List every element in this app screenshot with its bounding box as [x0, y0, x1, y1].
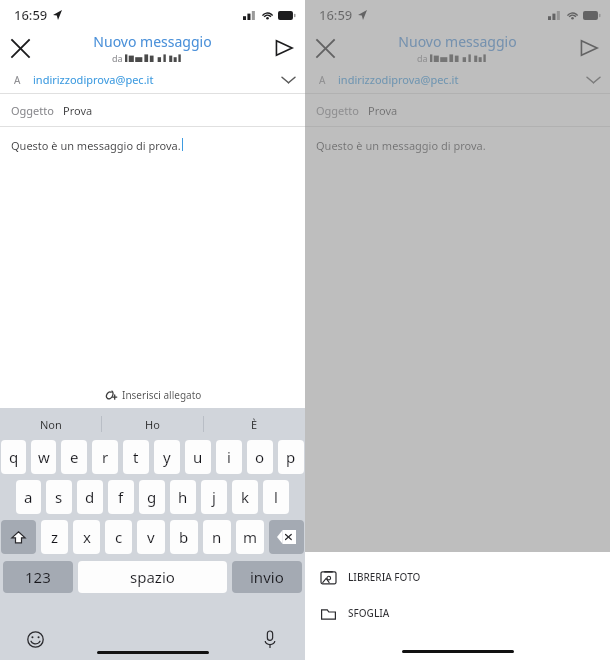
button[interactable]: v: [137, 520, 165, 554]
staticText: z: [51, 527, 59, 547]
staticText: r: [102, 447, 109, 467]
button[interactable]: j: [201, 480, 227, 514]
button[interactable]: h: [170, 480, 196, 514]
staticText: Oggetto: [11, 103, 54, 118]
staticText: s: [55, 487, 63, 507]
button[interactable]: a: [16, 480, 41, 514]
button[interactable]: w: [31, 440, 56, 474]
button[interactable]: t: [123, 440, 149, 474]
button[interactable]: Emoji: [22, 626, 48, 652]
staticText: f: [118, 487, 124, 507]
button[interactable]: Chiudi: [305, 30, 345, 66]
button[interactable]: p: [278, 440, 304, 474]
staticText: A: [14, 73, 21, 87]
button[interactable]: spazio: [78, 561, 227, 593]
staticText: g: [147, 487, 157, 507]
staticText: m: [243, 527, 258, 547]
button[interactable]: e: [61, 440, 87, 474]
staticText: d: [85, 487, 95, 507]
staticText: spazio: [130, 567, 175, 587]
staticText: È: [251, 417, 258, 432]
button[interactable]: Ho: [102, 408, 203, 440]
staticText: i: [227, 447, 231, 467]
staticText: t: [133, 447, 139, 467]
button[interactable]: f: [108, 480, 134, 514]
button[interactable]: SFOGLIA: [305, 601, 610, 625]
button[interactable]: Oggetto: [305, 94, 610, 126]
staticText: Non: [40, 417, 62, 432]
button[interactable]: z: [41, 520, 68, 554]
staticText: Nuovo messaggio: [93, 32, 212, 51]
button[interactable]: 123: [3, 561, 73, 593]
button[interactable]: A: [305, 66, 610, 93]
staticText: Questo è un messaggio di prova.: [11, 138, 181, 153]
button[interactable]: Maiuscole: [1, 520, 36, 554]
staticText: u: [193, 447, 203, 467]
button[interactable]: s: [46, 480, 72, 514]
button[interactable]: Oggetto: [0, 94, 305, 126]
button[interactable]: y: [154, 440, 180, 474]
button[interactable]: Dettatura: [257, 626, 283, 652]
staticText: 16:59: [319, 6, 353, 24]
staticText: Ho: [145, 417, 160, 432]
staticText: LIBRERIA FOTO: [348, 570, 421, 584]
staticText: l: [274, 487, 278, 507]
staticText: j: [212, 487, 216, 507]
button[interactable]: k: [232, 480, 258, 514]
staticText: Questo è un messaggio di prova.: [316, 138, 486, 153]
staticText: p: [286, 447, 296, 467]
staticText: Prova: [63, 103, 93, 118]
button[interactable]: Inserisci allegato: [0, 382, 305, 408]
staticText: 123: [25, 567, 51, 587]
staticText: indirizzodiprova@pec.it: [338, 72, 459, 87]
staticText: Oggetto: [316, 103, 359, 118]
staticText: indirizzodiprova@pec.it: [33, 72, 154, 87]
staticText: b: [179, 527, 189, 547]
button[interactable]: q: [1, 440, 26, 474]
button[interactable]: m: [236, 520, 264, 554]
button[interactable]: Non: [0, 408, 101, 440]
button[interactable]: b: [170, 520, 198, 554]
button[interactable]: n: [203, 520, 231, 554]
staticText: o: [255, 447, 265, 467]
staticText: q: [9, 447, 19, 467]
staticText: da: [417, 52, 428, 64]
button[interactable]: r: [92, 440, 118, 474]
staticText: n: [212, 527, 222, 547]
staticText: c: [115, 527, 123, 547]
staticText: e: [70, 447, 79, 467]
button[interactable]: È: [204, 408, 305, 440]
button[interactable]: invio: [232, 561, 302, 593]
staticText: a: [24, 487, 33, 507]
staticText: Prova: [368, 103, 398, 118]
button[interactable]: u: [185, 440, 211, 474]
staticText: Inserisci allegato: [122, 388, 202, 402]
staticText: A: [319, 73, 326, 87]
staticText: invio: [250, 567, 284, 587]
button[interactable]: i: [216, 440, 242, 474]
staticText: w: [38, 447, 50, 467]
button[interactable]: A: [0, 66, 305, 93]
staticText: da: [112, 52, 123, 64]
button[interactable]: o: [247, 440, 273, 474]
button[interactable]: Chiudi: [0, 30, 40, 66]
staticText: SFOGLIA: [348, 606, 390, 620]
staticText: 16:59: [14, 6, 48, 24]
button[interactable]: Invia: [568, 30, 610, 66]
button[interactable]: Cancella: [269, 520, 304, 554]
button[interactable]: l: [263, 480, 289, 514]
button[interactable]: Invia: [263, 30, 305, 66]
staticText: y: [163, 447, 171, 467]
button[interactable]: d: [77, 480, 103, 514]
button[interactable]: g: [139, 480, 165, 514]
staticText: k: [241, 487, 250, 507]
staticText: Nuovo messaggio: [398, 32, 517, 51]
button[interactable]: c: [105, 520, 132, 554]
button[interactable]: LIBRERIA FOTO: [305, 565, 610, 589]
button[interactable]: x: [73, 520, 100, 554]
staticText: x: [83, 527, 91, 547]
staticText: v: [147, 527, 155, 547]
staticText: h: [178, 487, 188, 507]
